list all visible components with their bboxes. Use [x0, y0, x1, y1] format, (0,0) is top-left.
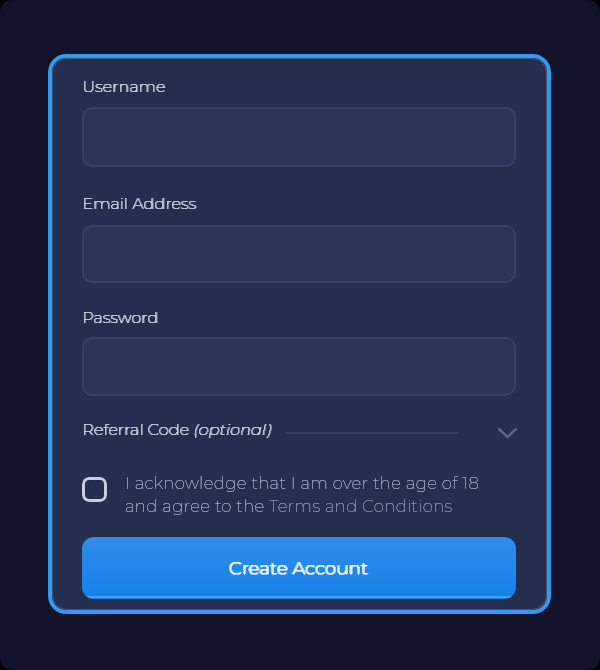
staticText: Username: [82, 77, 166, 97]
staticText: Username: [83, 77, 167, 97]
button[interactable]: Referral Code (optional): [82, 420, 516, 440]
staticText: Email Address: [82, 194, 197, 214]
staticText: Create Account: [229, 558, 369, 580]
staticText: Referral Code (optional): [82, 420, 272, 440]
staticText: Referral Code (optional): [83, 420, 273, 440]
staticText: Create Account: [229, 557, 369, 579]
staticText: Username: [82, 77, 166, 97]
staticText: I acknowledge that I am over the age of …: [125, 473, 480, 516]
button[interactable]: Create Account: [82, 537, 516, 599]
staticText: Password: [82, 308, 159, 328]
staticText: Referral Code (optional): [82, 420, 272, 440]
staticText: Password: [82, 308, 159, 328]
staticText: I acknowledge that I am over the age of …: [125, 473, 480, 516]
button[interactable]: [82, 477, 107, 502]
staticText: I acknowledge that I am over the age of …: [125, 473, 480, 516]
staticText: Password: [83, 308, 160, 328]
staticText: Create Account: [228, 557, 368, 579]
button[interactable]: [82, 107, 516, 167]
button[interactable]: [82, 225, 516, 283]
staticText: Email Address: [82, 194, 197, 214]
staticText: Email Address: [82, 194, 197, 214]
staticText: Email Address: [83, 194, 198, 214]
staticText: Password: [82, 308, 159, 328]
staticText: Create Account: [230, 557, 370, 579]
staticText: Username: [82, 77, 166, 97]
button[interactable]: [82, 337, 516, 396]
staticText: Referral Code (optional): [82, 420, 272, 440]
staticText: I acknowledge that I am over the age of …: [125, 473, 480, 516]
